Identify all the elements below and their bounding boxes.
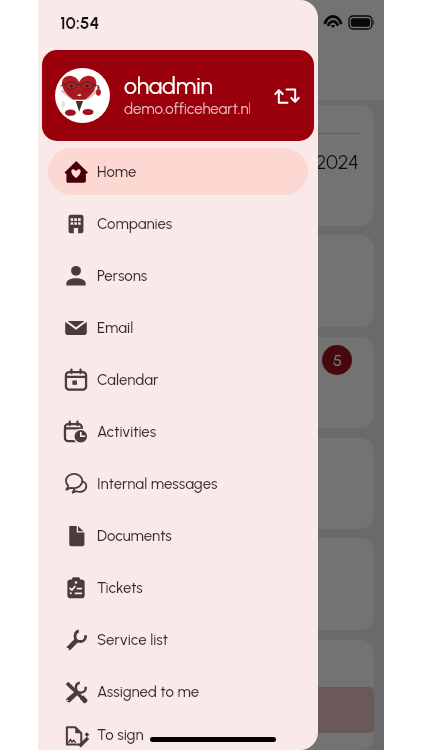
- staticText: Home: [97, 163, 137, 181]
- button[interactable]: Home: [48, 148, 308, 195]
- staticText: 23-01-2024: [260, 150, 360, 174]
- staticText: Tickets: [97, 579, 143, 597]
- staticText: Add device: [62, 592, 142, 611]
- staticText: Persons: [97, 267, 148, 285]
- staticText: 10:54: [60, 13, 100, 33]
- staticText: Calendar: [97, 371, 159, 389]
- button[interactable]: Calendar: [48, 356, 308, 403]
- button[interactable]: Companies: [48, 200, 308, 247]
- button[interactable]: Switch account: [270, 79, 304, 113]
- staticText: Documents: [97, 527, 172, 545]
- staticText: demo.officeheart.nl: [56, 76, 184, 94]
- button[interactable]: Email: [48, 304, 308, 351]
- button[interactable]: Activities: [48, 408, 308, 455]
- staticText: ohadmin: [56, 50, 141, 76]
- button[interactable]: Assigned to me: [48, 668, 308, 715]
- staticText: Planning: [62, 701, 129, 720]
- staticText: Companies: [97, 215, 173, 233]
- staticText: 5: [333, 351, 342, 370]
- staticText: Service list: [97, 631, 168, 649]
- staticText: Assigned to ...: [62, 492, 156, 511]
- staticText: Assigned to me: [97, 683, 200, 701]
- staticText: Activities: [97, 423, 157, 441]
- button[interactable]: Persons: [48, 252, 308, 299]
- button[interactable]: Documents: [48, 512, 308, 559]
- button[interactable]: Service list: [48, 616, 308, 663]
- staticText: To sign: [97, 726, 144, 744]
- staticText: Internal: [62, 383, 115, 402]
- staticText: Internal messages: [97, 475, 218, 493]
- staticText: ohadmin: [124, 72, 213, 100]
- staticText: demo.officeheart.nl: [124, 100, 250, 118]
- button[interactable]: To sign: [48, 720, 308, 750]
- staticText: Email: [97, 319, 134, 337]
- button[interactable]: Internal messages: [48, 460, 308, 507]
- staticText: messages: [62, 402, 133, 421]
- button[interactable]: Tickets: [48, 564, 308, 611]
- button[interactable]: ohadmin: [42, 50, 314, 141]
